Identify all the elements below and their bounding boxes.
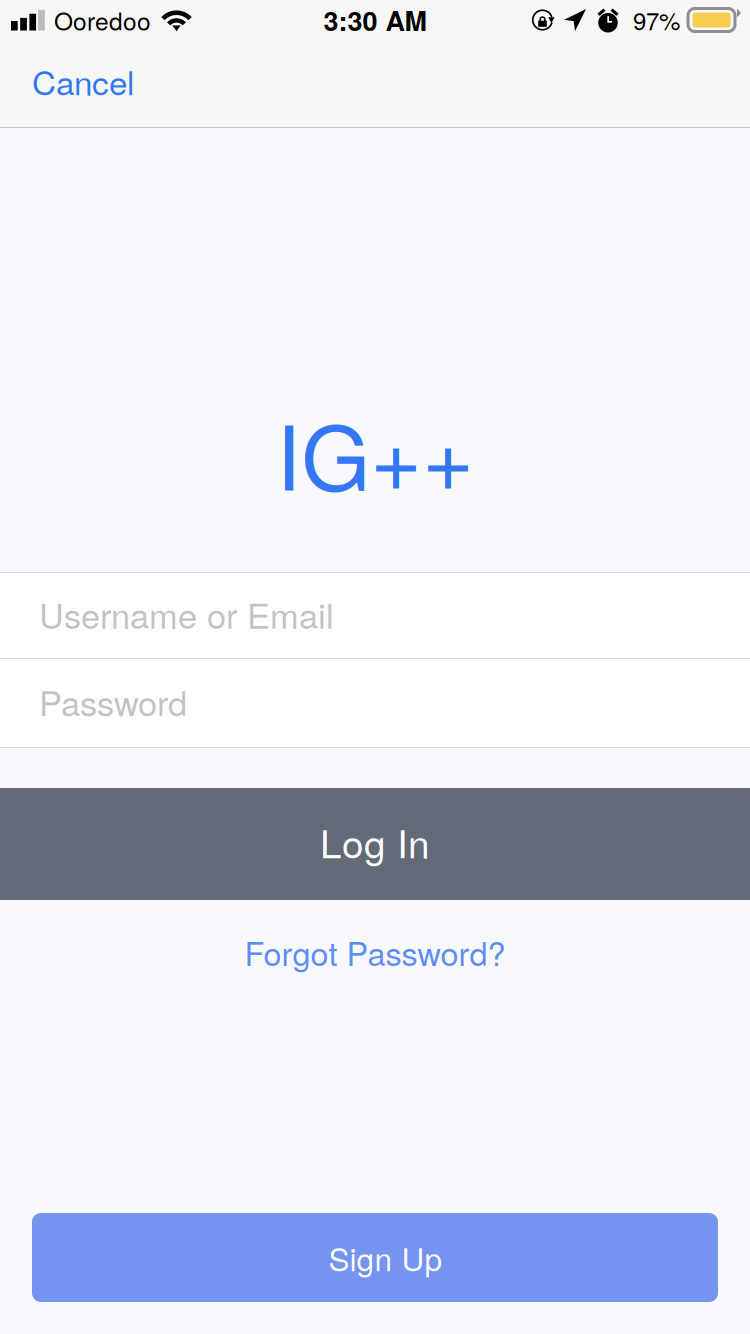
staticText: Log In — [320, 814, 430, 869]
staticText: Cancel — [32, 57, 134, 105]
button[interactable]: Username or Email — [0, 573, 750, 658]
button[interactable]: Password — [0, 659, 750, 747]
button[interactable]: Cancel — [0, 40, 154, 127]
staticText: Ooredoo — [54, 2, 151, 38]
staticText: 97% — [633, 3, 680, 37]
button[interactable]: Sign Up — [32, 1213, 718, 1302]
staticText: Username or Email — [39, 589, 334, 639]
staticText: Forgot Password? — [244, 929, 505, 975]
staticText: Sign Up — [328, 1235, 442, 1280]
button[interactable]: Forgot Password? — [0, 900, 750, 1004]
button[interactable]: Log In — [0, 788, 750, 900]
staticText: Password — [39, 677, 187, 726]
staticText: IG++ — [276, 388, 474, 516]
staticText: 3:30 AM — [323, 1, 426, 39]
